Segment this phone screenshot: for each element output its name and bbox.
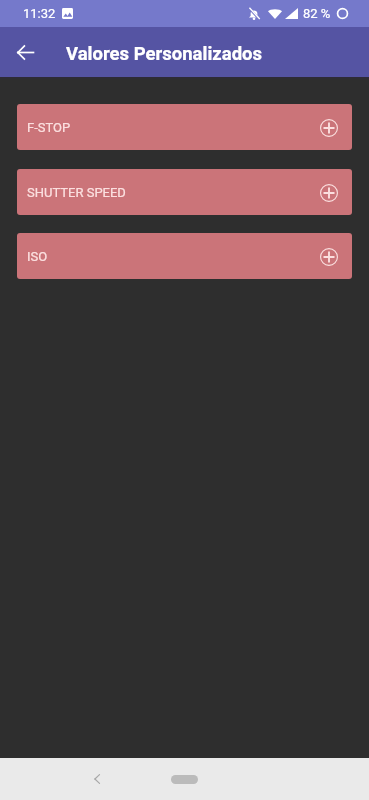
staticText: 11:32 bbox=[23, 6, 56, 21]
button[interactable]: SHUTTER SPEED bbox=[17, 169, 352, 215]
button[interactable]: Back bbox=[82, 764, 112, 794]
button[interactable]: ISO bbox=[17, 233, 352, 279]
staticText: ISO bbox=[27, 249, 48, 264]
staticText: F-STOP bbox=[27, 120, 71, 135]
button[interactable]: F-STOP bbox=[17, 104, 352, 150]
staticText: Valores Personalizados bbox=[66, 43, 263, 65]
staticText: SHUTTER SPEED bbox=[27, 185, 126, 200]
button[interactable]: Back bbox=[6, 33, 44, 71]
button[interactable]: Home bbox=[171, 775, 198, 784]
staticText: 82 % bbox=[303, 6, 331, 21]
